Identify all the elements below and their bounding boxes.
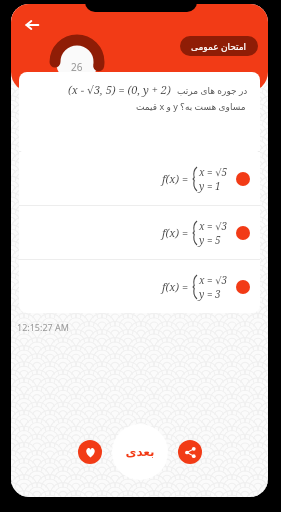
staticText: امتحان عمومی [191,40,247,52]
staticText: x = √5 [199,111,228,125]
staticText: (x − √3, 5) = (0, y + 2) [68,82,171,97]
staticText: x = √5 [199,165,228,179]
staticText: بعدی [125,445,155,459]
button[interactable]: امتحان عمومی [180,36,258,56]
button[interactable]: f(x) = [19,206,260,259]
button[interactable]: f(x) = [19,152,260,205]
button[interactable]: f(x) = [19,98,260,151]
staticText: قیمت x و y مساوی هست به؟ [136,100,246,112]
staticText: 26 [71,60,83,74]
staticText: y = 5 [199,233,221,247]
button[interactable]: بعدی [112,424,168,480]
staticText: y = 3 [199,287,221,301]
staticText: f(x) = [162,225,189,240]
button[interactable]: Favorite [78,440,102,464]
staticText: در جوره های مرتب [177,84,248,96]
staticText: y = 1 [199,179,221,193]
button[interactable]: Back [19,12,45,38]
staticText: x = √3 [199,273,228,287]
staticText: 12:15:27 AM [17,321,69,333]
button[interactable]: f(x) = [19,260,260,313]
button[interactable]: (x − √3, 5) = (0, y + 2) [19,72,260,154]
staticText: f(x) = [162,279,189,294]
staticText: f(x) = [162,171,189,186]
button[interactable]: Share [178,440,202,464]
staticText: x = √3 [199,219,228,233]
